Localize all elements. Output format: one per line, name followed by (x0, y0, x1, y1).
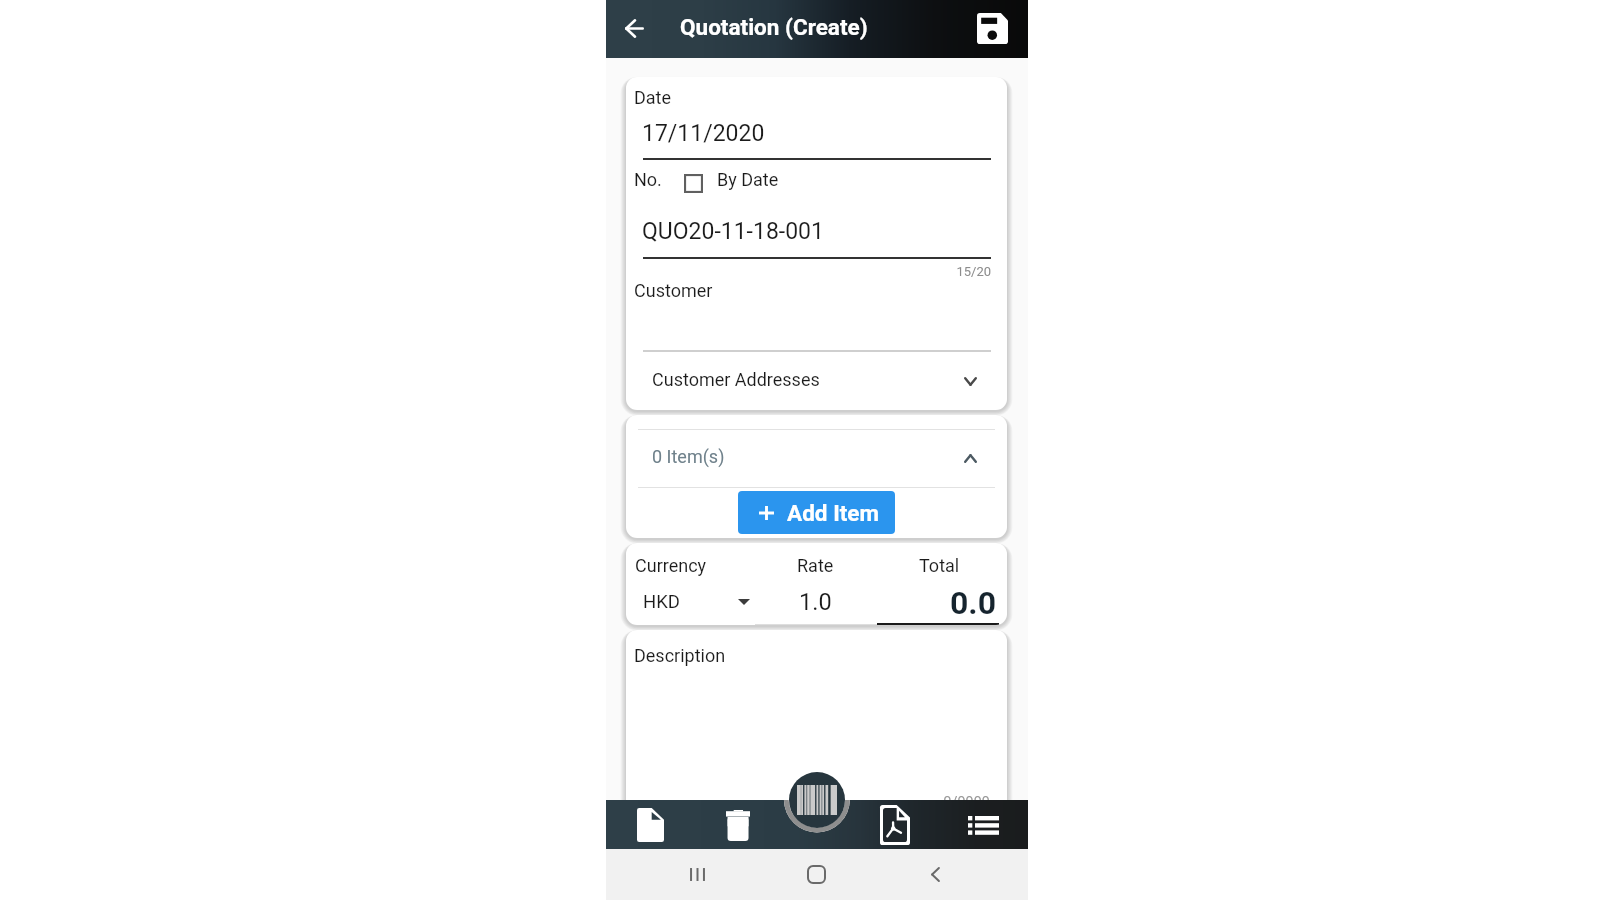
staticText: 15/20 (626, 264, 991, 279)
button[interactable]: Export PDF (868, 800, 922, 849)
staticText: Description (634, 645, 726, 666)
staticText: Customer Addresses (652, 369, 820, 390)
staticText: 0 Item(s) (652, 446, 725, 467)
button[interactable]: List (956, 800, 1010, 849)
staticText: Date (634, 87, 672, 108)
staticText: Quotation (Create) (680, 14, 868, 40)
staticText: QUO20-11-18-001 (642, 218, 824, 245)
button[interactable]: By Date checkbox (679, 169, 707, 197)
staticText: 17/11/2020 (642, 120, 765, 147)
staticText: No. (634, 169, 662, 190)
button[interactable]: Delete (711, 800, 765, 849)
staticText: 0/9999 (626, 794, 990, 811)
staticText: 1.0 (799, 588, 832, 616)
button[interactable]: New document (623, 800, 677, 849)
staticText: 0.0 (950, 584, 997, 622)
button[interactable]: Add Item (738, 491, 895, 534)
staticText: Total (919, 555, 960, 576)
button[interactable]: Scan barcode (789, 772, 845, 828)
staticText: HKD (643, 591, 680, 613)
staticText: Currency (635, 555, 707, 576)
staticText: Customer (634, 280, 713, 301)
button[interactable]: Currency (634, 585, 770, 615)
staticText: By Date (717, 169, 779, 190)
staticText: Add Item (787, 500, 879, 526)
button[interactable]: Back (612, 6, 656, 50)
button[interactable]: 0 Item(s) (626, 430, 1007, 487)
button[interactable]: Customer Addresses (626, 350, 1007, 406)
staticText: Rate (797, 555, 834, 576)
button[interactable]: Save (970, 6, 1014, 50)
